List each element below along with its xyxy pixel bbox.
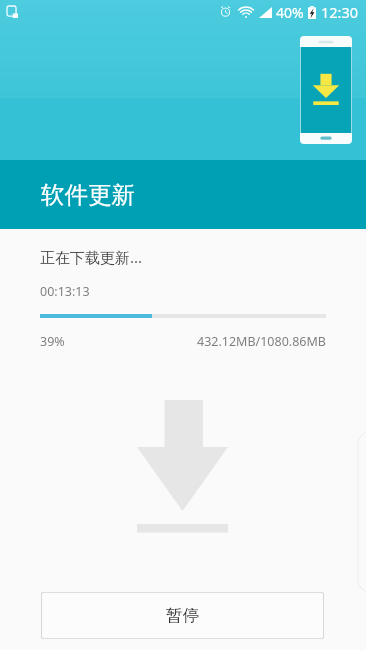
- staticText: 暂停: [166, 605, 199, 626]
- other: Notification: [7, 6, 18, 18]
- staticText: 软件更新: [41, 180, 135, 210]
- staticText: 12:30: [321, 2, 359, 22]
- staticText: 正在下载更新...: [40, 247, 143, 267]
- button[interactable]: 暂停: [41, 592, 324, 639]
- staticText: 39%: [40, 333, 65, 350]
- staticText: 432.12MB/1080.86MB: [197, 333, 326, 350]
- staticText: 40%: [276, 3, 304, 22]
- staticText: 00:13:13: [40, 283, 90, 300]
